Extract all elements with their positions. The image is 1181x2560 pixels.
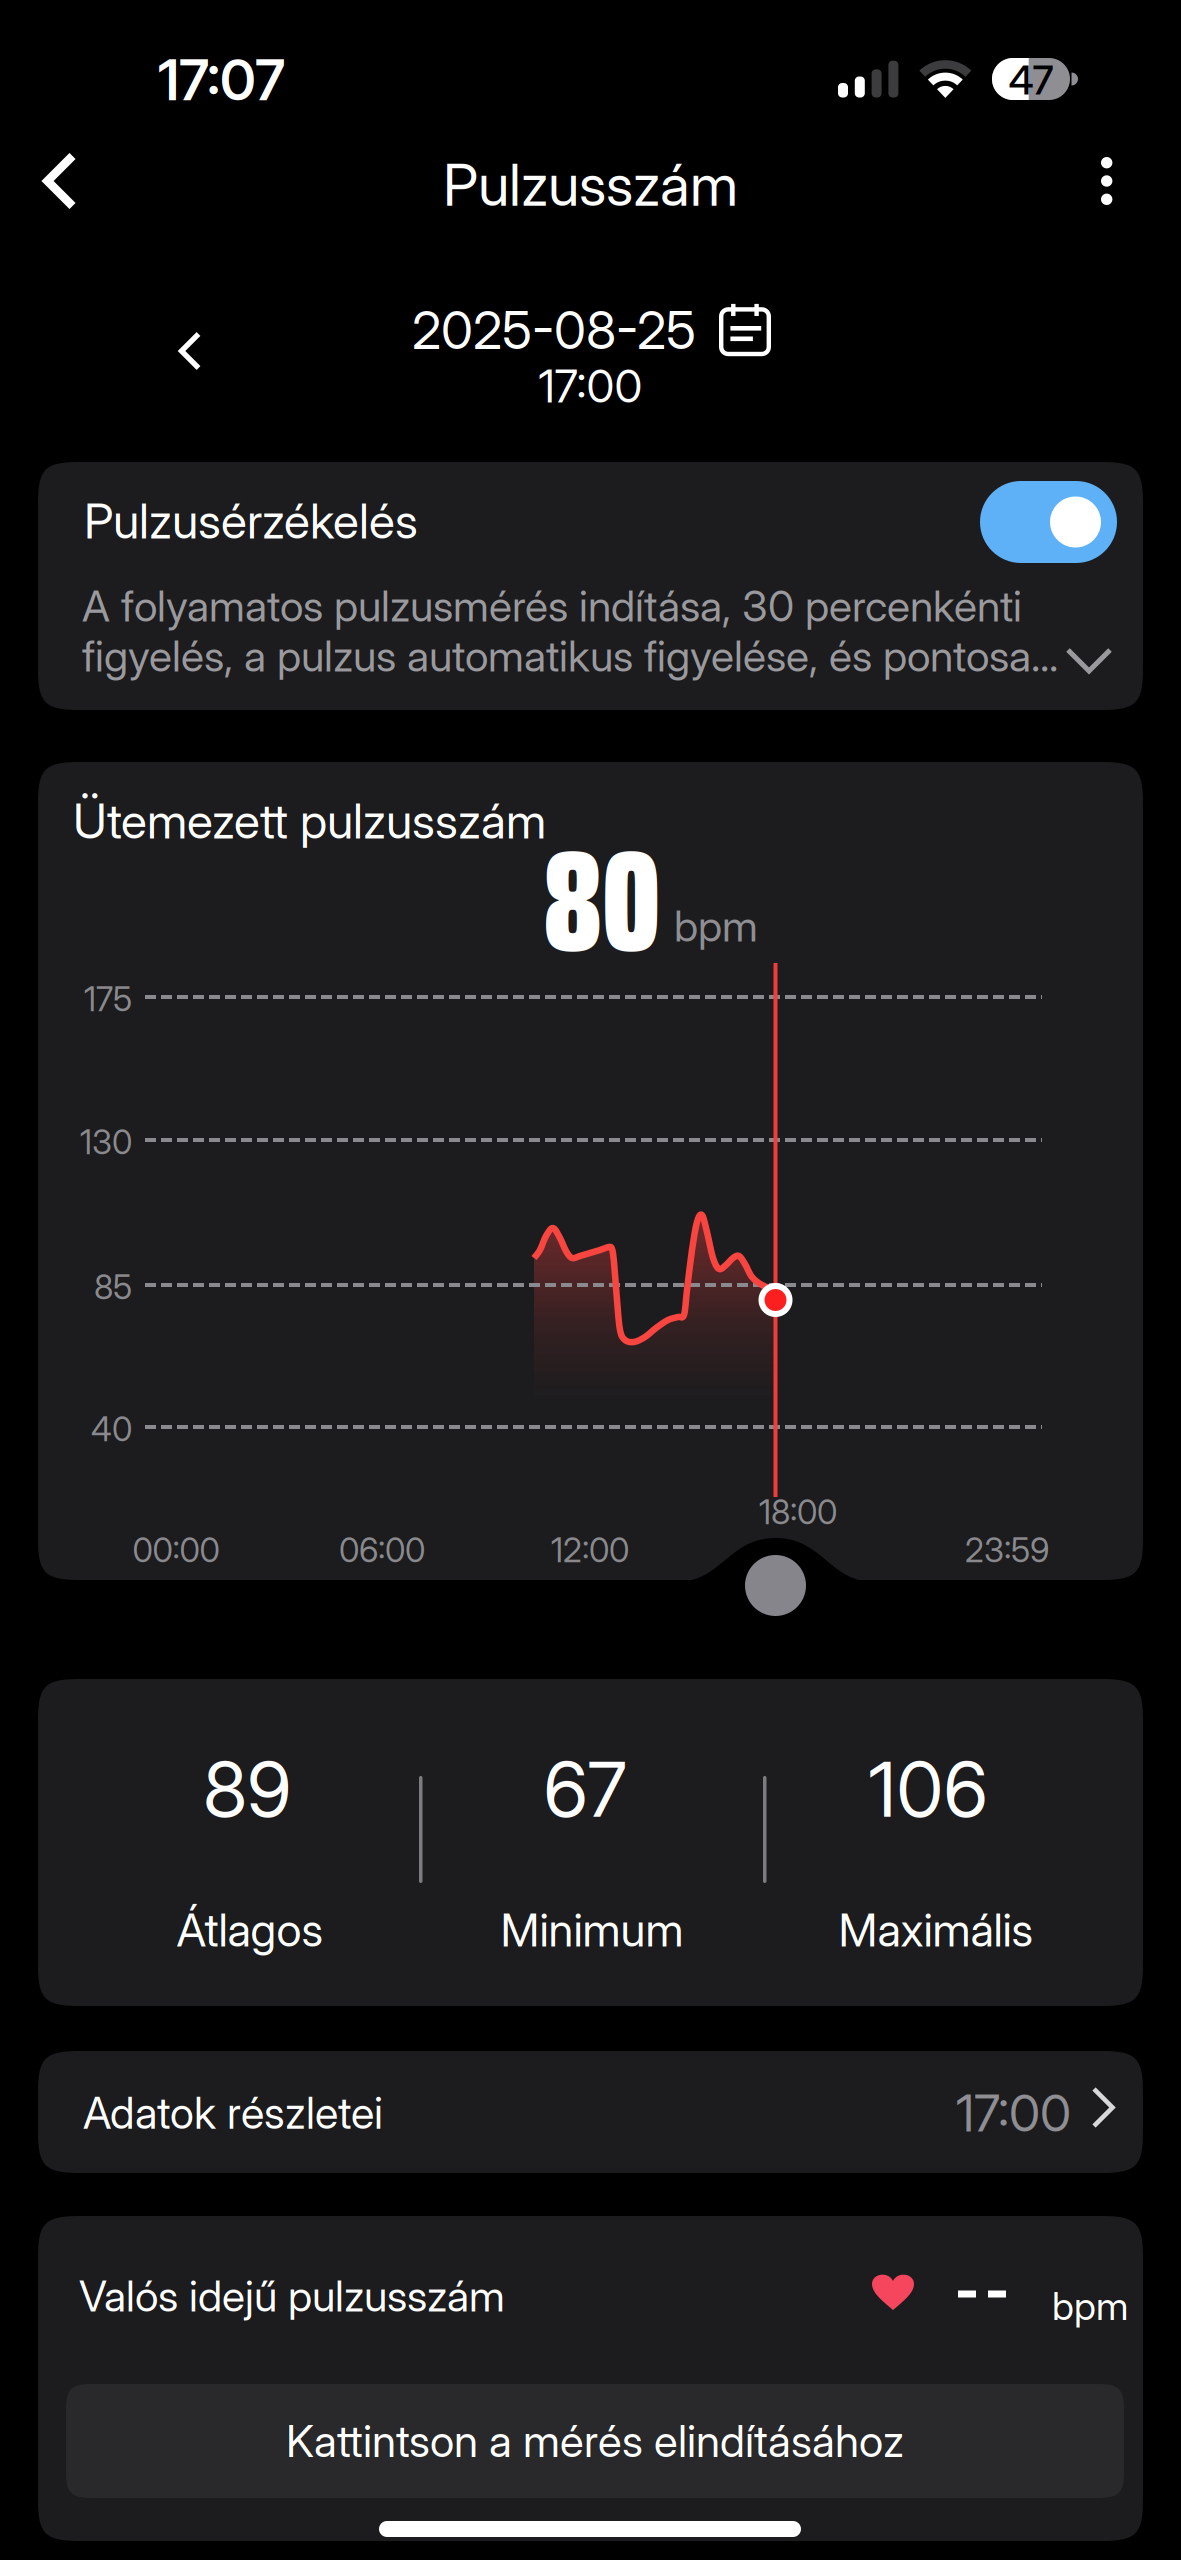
button[interactable]: Time slider handle [745,1555,806,1616]
staticText: 89 [203,1743,291,1835]
staticText: 175 [84,979,132,1019]
staticText: Pulzusszám [443,150,738,220]
staticText: 106 [868,1743,987,1835]
staticText: figyelés, a pulzus automatikus figyelése… [82,630,1058,682]
staticText: Maximális [838,1903,1033,1957]
staticText: 47 [1008,56,1053,104]
button[interactable]: More options [1051,145,1163,217]
staticText: Ütemezett pulzusszám [73,792,546,850]
staticText: 12:00 [551,1530,629,1570]
staticText: 18:00 [759,1492,837,1532]
staticText: Minimum [500,1903,683,1957]
staticText: 40 [91,1409,132,1449]
button[interactable]: Adatok részletei [38,2051,1143,2173]
staticText: 00:00 [132,1530,219,1570]
staticText: 17:00 [956,2082,1071,2144]
button[interactable]: Previous day [134,295,246,407]
button[interactable]: Expand description [1055,640,1125,684]
staticText: Kattintson a mérés elindításához [286,2414,904,2468]
staticText: 06:00 [339,1530,425,1570]
staticText: 80 [543,789,660,1013]
staticText: 23:59 [965,1530,1049,1570]
button[interactable]: Heart rate sensing toggle [980,481,1117,563]
staticText: Pulzusérzékelés [84,492,418,550]
button[interactable]: Kattintson a mérés elindításához [66,2384,1124,2498]
staticText: A folyamatos pulzusmérés indítása, 30 pe… [82,580,1022,632]
staticText: 85 [94,1267,132,1307]
staticText: 67 [543,1743,626,1835]
staticText: Átlagos [176,1903,323,1957]
staticText: bpm [674,900,758,952]
staticText: Adatok részletei [83,2087,383,2139]
staticText: bpm [1052,2283,1128,2329]
staticText: 17:00 [538,359,642,413]
button[interactable]: Back [4,132,116,230]
staticText: 17:07 [158,46,285,114]
staticText: 2025-08-25 [412,298,696,361]
staticText: 130 [80,1122,132,1162]
staticText: Valós idejű pulzusszám [79,2270,505,2322]
